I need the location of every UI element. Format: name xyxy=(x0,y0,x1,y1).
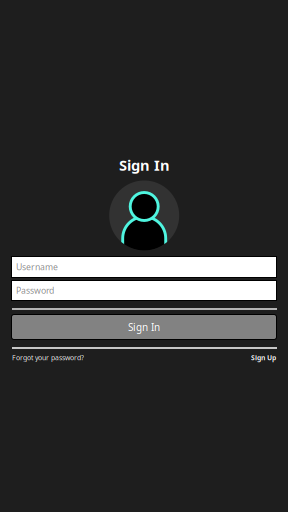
button[interactable]: Sign Up xyxy=(251,353,276,362)
staticText: Password xyxy=(16,285,54,296)
staticText: Sign Up xyxy=(251,353,276,362)
button[interactable]: Password xyxy=(11,280,277,301)
staticText: Username xyxy=(16,261,58,273)
button[interactable]: Username xyxy=(11,256,277,278)
staticText: Sign In xyxy=(128,320,160,334)
button[interactable]: Forgot your password? xyxy=(12,353,84,362)
staticText: Sign In xyxy=(119,155,170,175)
button[interactable]: Sign In xyxy=(11,314,277,340)
staticText: Forgot your password? xyxy=(12,353,84,362)
